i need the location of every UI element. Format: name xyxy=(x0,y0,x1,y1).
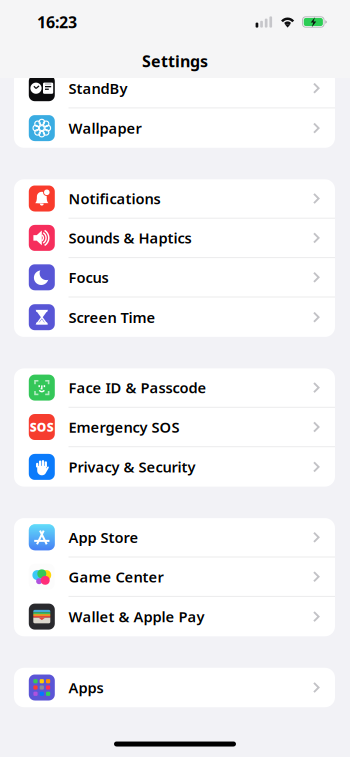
staticText: Wallpaper xyxy=(68,118,141,138)
button[interactable]: App Store xyxy=(14,518,335,557)
button[interactable]: StandBy xyxy=(14,69,335,108)
staticText: Game Center xyxy=(68,567,163,586)
staticText: 16:23 xyxy=(37,11,77,33)
staticText: Notifications xyxy=(68,189,160,208)
button[interactable]: Privacy & Security xyxy=(14,447,335,487)
staticText: Apps xyxy=(68,678,103,697)
staticText: Privacy & Security xyxy=(68,457,195,477)
staticText: Wallet & Apple Pay xyxy=(68,607,204,626)
staticText: Emergency SOS xyxy=(68,417,179,437)
button[interactable]: Wallpaper xyxy=(14,108,335,148)
button[interactable]: Game Center xyxy=(14,557,335,597)
staticText: Sounds & Haptics xyxy=(68,228,191,248)
button[interactable]: Sounds & Haptics xyxy=(14,219,335,258)
button[interactable]: Notifications xyxy=(14,179,335,219)
staticText: Face ID & Passcode xyxy=(68,378,206,397)
staticText: Screen Time xyxy=(68,307,155,327)
staticText: App Store xyxy=(68,528,138,547)
staticText: StandBy xyxy=(68,78,127,98)
button[interactable]: Apps xyxy=(14,668,335,707)
staticText: SOS xyxy=(30,419,54,435)
button[interactable]: Face ID & Passcode xyxy=(14,368,335,408)
button[interactable]: SOS xyxy=(14,408,335,447)
staticText: Focus xyxy=(68,268,108,287)
button[interactable]: Focus xyxy=(14,258,335,297)
button[interactable]: Screen Time xyxy=(14,297,335,337)
button[interactable]: Wallet & Apple Pay xyxy=(14,597,335,636)
staticText: Settings xyxy=(142,50,208,72)
